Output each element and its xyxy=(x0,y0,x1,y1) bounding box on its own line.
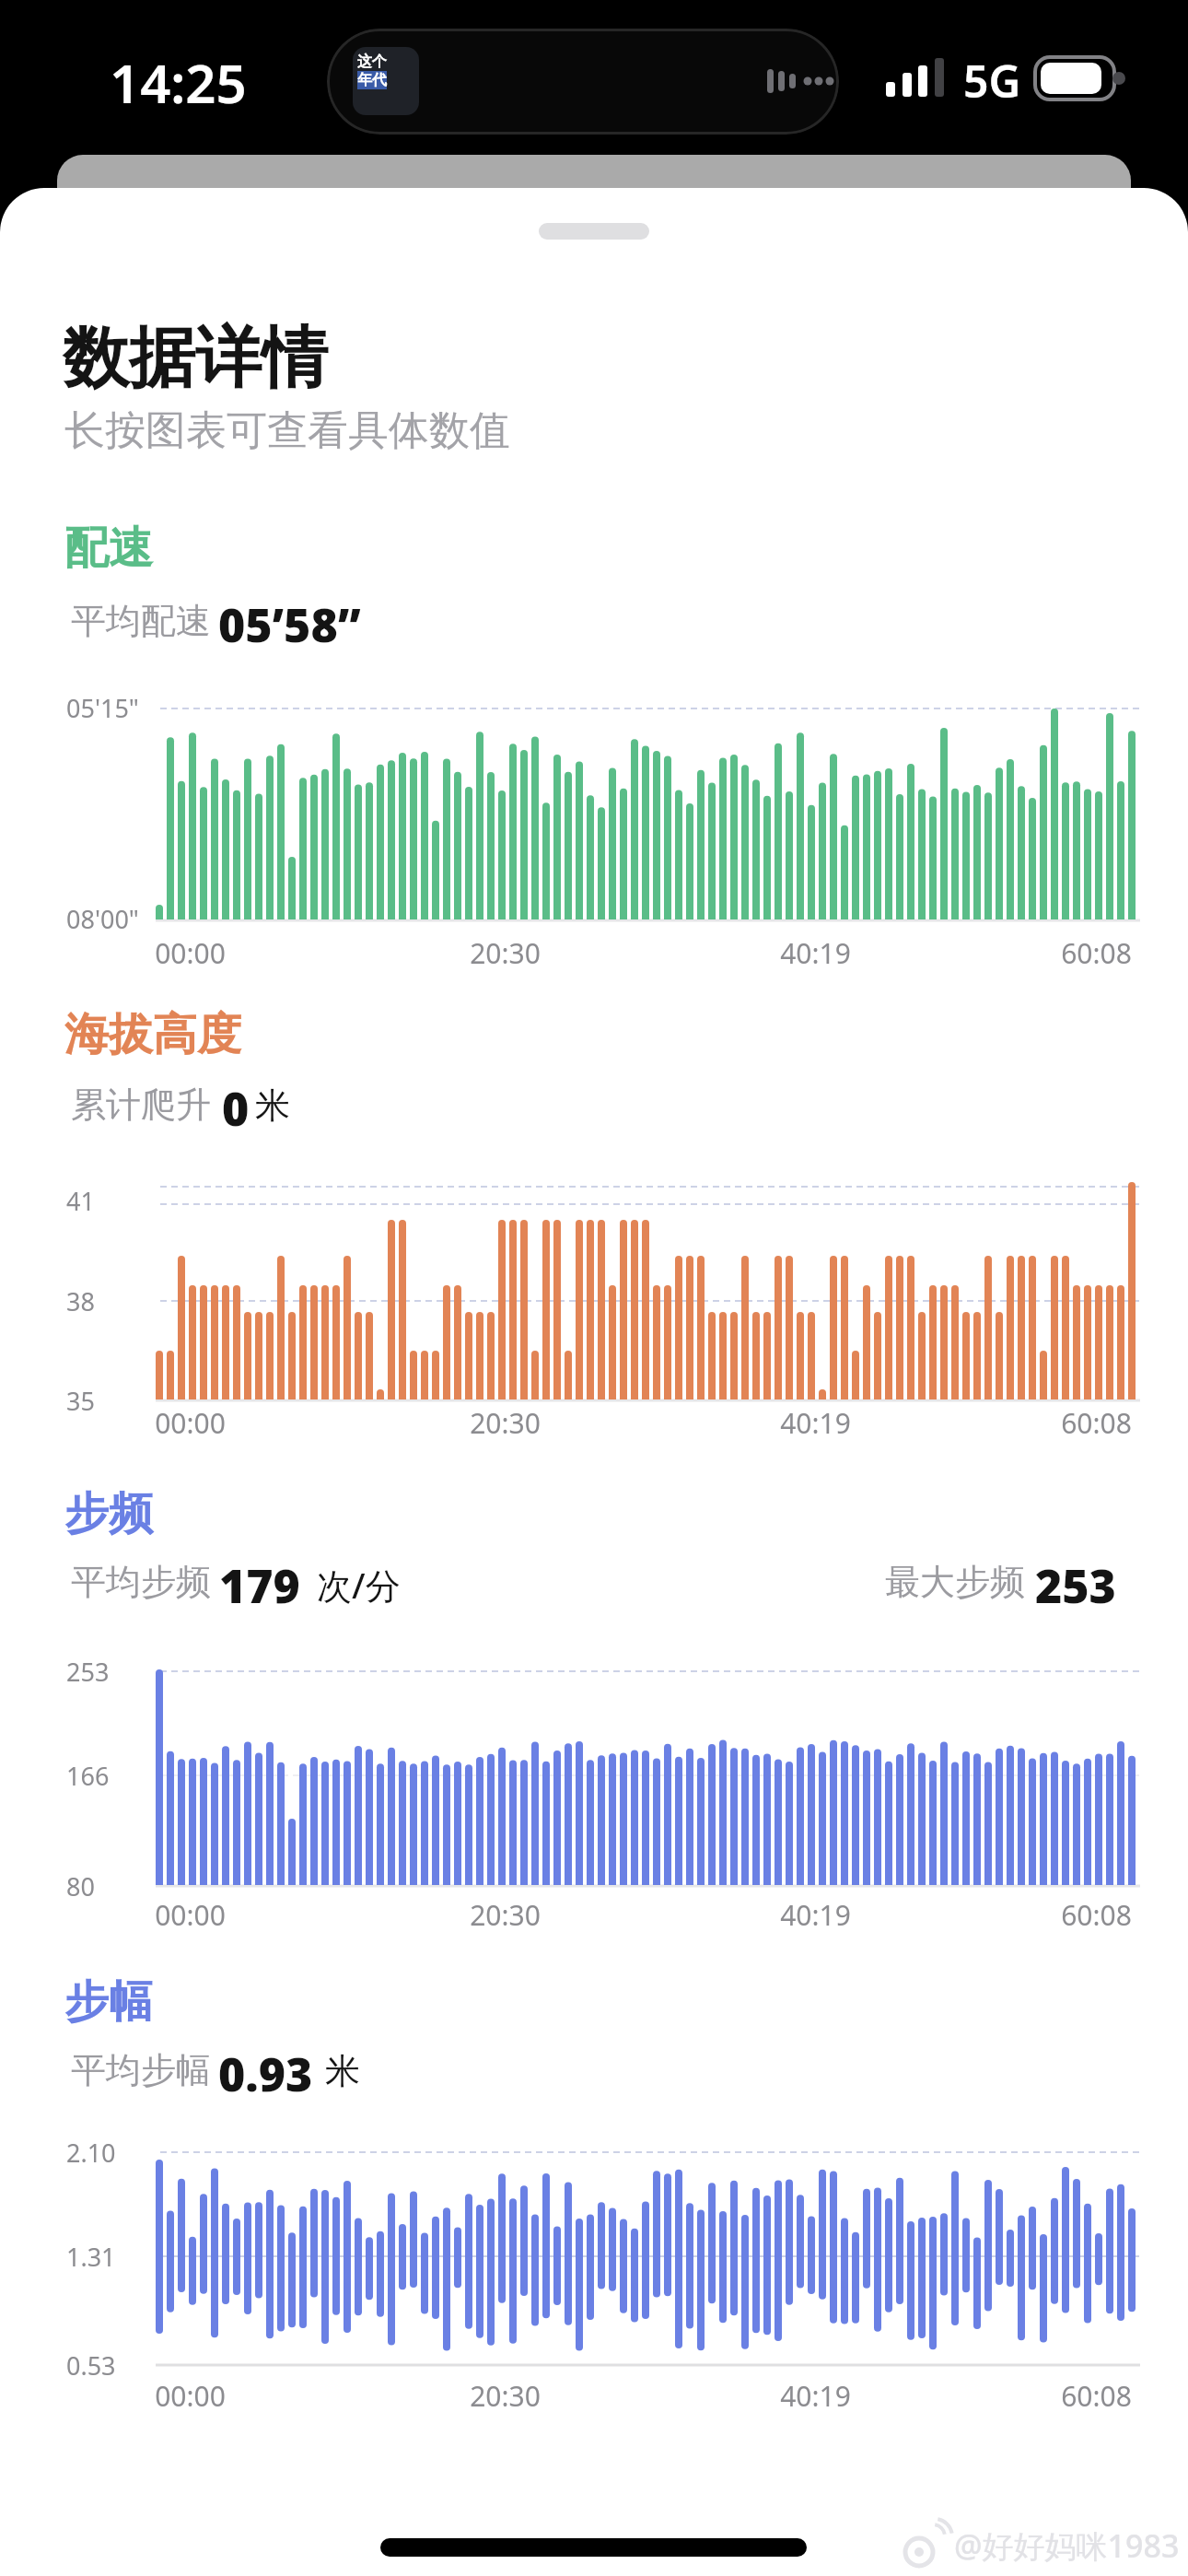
staticText: 05'15" xyxy=(66,691,139,725)
staticText: 0.93 xyxy=(218,2043,313,2105)
staticText: 20:30 xyxy=(470,1896,541,1934)
staticText: 5G xyxy=(963,51,1021,111)
staticText: 20:30 xyxy=(470,1404,541,1442)
staticText: 00:00 xyxy=(155,934,226,972)
staticText: 累计爬升 xyxy=(71,1083,211,1127)
staticText: 0.53 xyxy=(66,2348,116,2383)
staticText: 00:00 xyxy=(155,1896,226,1934)
staticText: 最大步频 xyxy=(885,1560,1025,1604)
staticText: 20:30 xyxy=(470,934,541,972)
staticText: 60:08 xyxy=(1061,1896,1132,1934)
staticText: 08'00" xyxy=(66,902,139,936)
staticText: 00:00 xyxy=(155,1404,226,1442)
staticText: 41 xyxy=(66,1184,95,1218)
staticText: 米 xyxy=(325,2049,360,2093)
staticText: 这个 xyxy=(357,53,387,71)
staticText: 长按图表可查看具体数值 xyxy=(64,405,510,456)
staticText: 步频 xyxy=(64,1486,153,1541)
staticText: 253 xyxy=(66,1655,110,1689)
staticText: 米 xyxy=(255,1083,290,1128)
staticText: 05’58” xyxy=(218,593,361,656)
staticText: 40:19 xyxy=(780,1404,851,1442)
staticText: 次/分 xyxy=(317,1561,401,1609)
staticText: 配速 xyxy=(64,521,153,576)
staticText: 166 xyxy=(66,1759,110,1793)
staticText: 80 xyxy=(66,1869,95,1903)
staticText: 年代 xyxy=(357,71,387,89)
staticText: 60:08 xyxy=(1061,2377,1132,2415)
staticText: 20:30 xyxy=(470,2377,541,2415)
staticText: 179 xyxy=(219,1554,300,1617)
staticText: @好好妈咪1983 xyxy=(954,2524,1180,2567)
staticText: 40:19 xyxy=(780,2377,851,2415)
staticText: 40:19 xyxy=(780,934,851,972)
staticText: 平均配速 xyxy=(71,599,211,643)
staticText: 海拔高度 xyxy=(64,1007,241,1062)
staticText: 平均步幅 xyxy=(71,2048,211,2092)
button[interactable]: 这个 xyxy=(327,29,839,135)
staticText: 38 xyxy=(66,1284,95,1318)
button[interactable] xyxy=(539,223,649,240)
staticText: 35 xyxy=(66,1384,95,1418)
staticText: 0 xyxy=(222,1077,250,1140)
staticText: 数据详情 xyxy=(63,317,328,401)
staticText: 平均步频 xyxy=(71,1560,211,1604)
staticText: 14:25 xyxy=(110,46,247,119)
staticText: 40:19 xyxy=(780,1896,851,1934)
staticText: 1.31 xyxy=(66,2240,116,2274)
staticText: 253 xyxy=(1035,1554,1116,1617)
staticText: 2.10 xyxy=(66,2136,116,2170)
staticText: 00:00 xyxy=(155,2377,226,2415)
staticText: 60:08 xyxy=(1061,1404,1132,1442)
staticText: 60:08 xyxy=(1061,934,1132,972)
staticText: 步幅 xyxy=(64,1974,153,2030)
